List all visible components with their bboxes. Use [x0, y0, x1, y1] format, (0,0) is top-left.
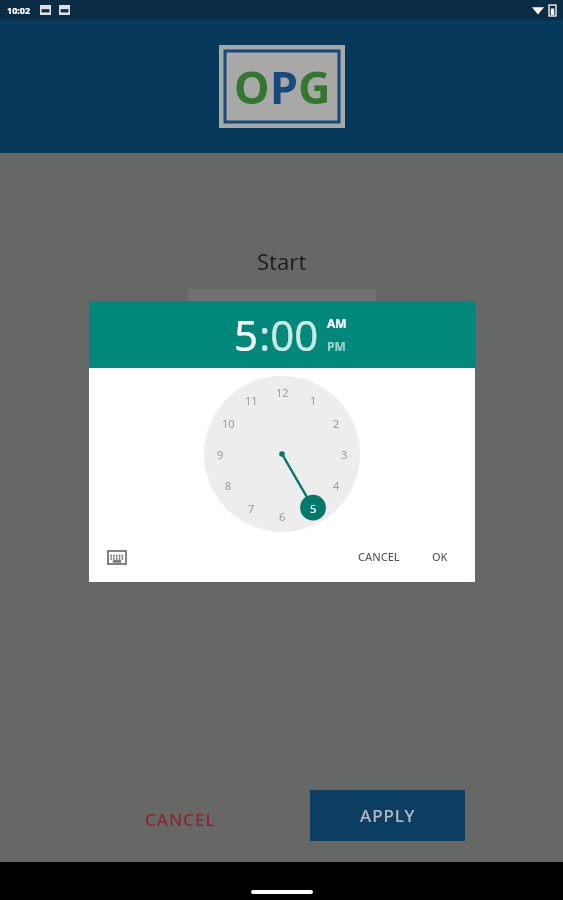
staticText: 8: [225, 478, 232, 493]
staticText: PM: [327, 338, 346, 354]
staticText: 7: [248, 501, 255, 516]
button[interactable]: [188, 289, 376, 333]
staticText: OK: [432, 549, 448, 564]
staticText: 5: [310, 501, 317, 516]
staticText: 11: [245, 393, 258, 408]
staticText: 4: [333, 478, 340, 493]
button[interactable]: 1: [204, 376, 360, 532]
button[interactable]: PM: [327, 338, 346, 354]
staticText: CANCEL: [358, 549, 400, 564]
staticText: 6: [279, 509, 286, 524]
staticText: 2: [333, 416, 340, 431]
staticText: :00: [259, 306, 319, 363]
button[interactable]: APPLY: [310, 790, 465, 841]
staticText: APPLY: [360, 804, 416, 827]
staticText: O: [234, 56, 270, 117]
staticText: 12: [276, 385, 289, 400]
button[interactable]: 5: [234, 306, 319, 363]
staticText: 3: [341, 447, 348, 462]
staticText: Start: [257, 246, 307, 276]
staticText: 10: [222, 416, 235, 431]
button[interactable]: AM: [327, 315, 347, 331]
button[interactable]: CANCEL: [131, 800, 230, 839]
button[interactable]: OK: [425, 544, 455, 569]
button[interactable]: Switch to text input: [106, 546, 128, 568]
staticText: 9: [217, 447, 224, 462]
staticText: G: [298, 56, 331, 117]
button[interactable]: CANCEL: [351, 544, 407, 569]
staticText: 5: [234, 306, 259, 363]
staticText: P: [270, 56, 298, 117]
staticText: AM: [327, 315, 347, 331]
staticText: CANCEL: [145, 808, 216, 831]
staticText: 1: [310, 393, 317, 408]
staticText: 10:02: [7, 4, 31, 16]
